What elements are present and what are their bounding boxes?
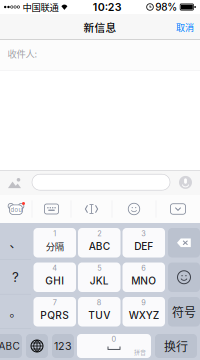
staticText: WXYZ <box>129 309 159 321</box>
staticText: 1 <box>53 229 56 238</box>
button[interactable]: Input method settings <box>0 195 32 223</box>
staticText: 123 <box>54 339 72 352</box>
staticText: 8 <box>97 298 102 307</box>
staticText: 98% <box>155 1 177 13</box>
button[interactable]: 9 <box>122 297 165 326</box>
button[interactable]: 3 <box>122 228 165 257</box>
staticText: 中国联通 <box>23 0 59 14</box>
staticText: 换行 <box>164 337 188 355</box>
button[interactable]: Dictate <box>175 172 195 192</box>
staticText: DEF <box>134 240 153 252</box>
button[interactable]: ? <box>0 262 31 292</box>
staticText: 4 <box>52 264 57 272</box>
staticText: 、 <box>9 234 21 251</box>
staticText: ABC <box>89 240 110 252</box>
staticText: 分隔 <box>46 239 64 253</box>
staticText: 。 <box>9 303 21 320</box>
button[interactable]: Keyboard layout <box>32 195 70 223</box>
button[interactable]: 1 <box>33 228 76 257</box>
staticText: 7 <box>53 298 57 307</box>
staticText: 9 <box>141 298 146 307</box>
staticText: JKL <box>90 275 109 287</box>
staticText: ? <box>12 269 19 285</box>
staticText: PQRS <box>40 309 69 321</box>
staticText: 5 <box>97 264 101 272</box>
button[interactable] <box>168 262 200 292</box>
staticText: 新信息 <box>83 19 116 35</box>
button[interactable]: 取消 <box>170 15 200 39</box>
button[interactable]: 5 <box>78 262 120 292</box>
button[interactable]: 4 <box>33 262 76 292</box>
staticText: 10:23 <box>93 0 122 13</box>
button[interactable]: 7 <box>33 297 76 326</box>
button[interactable]: ABC <box>0 334 22 358</box>
staticText: 符号 <box>172 303 196 320</box>
button[interactable]: 换行 <box>155 334 197 358</box>
button[interactable]: Emoji <box>112 195 155 223</box>
staticText: 3 <box>141 229 146 238</box>
staticText: 6 <box>141 264 146 272</box>
button[interactable]: 6 <box>122 262 165 292</box>
staticText: 收件人: <box>7 47 37 60</box>
button[interactable]: 8 <box>78 297 120 326</box>
button[interactable]: 、 <box>0 228 31 257</box>
button[interactable]: Space <box>77 334 151 358</box>
button[interactable]: Move cursor <box>71 195 111 223</box>
staticText: TUV <box>88 309 110 321</box>
button[interactable]: Hide keyboard <box>156 195 199 223</box>
button[interactable] <box>168 228 200 257</box>
staticText: 0 <box>111 335 116 343</box>
staticText: ABC <box>0 340 19 352</box>
button[interactable]: 符号 <box>168 297 200 326</box>
button[interactable]: 2 <box>78 228 120 257</box>
staticText: dou <box>10 206 21 213</box>
staticText: 2 <box>97 229 101 238</box>
button[interactable]: 123 <box>52 334 74 358</box>
staticText: GHI <box>45 275 64 287</box>
staticText: 拼音 <box>134 348 146 356</box>
button[interactable]: Attach photo <box>2 173 26 193</box>
staticText: 取消 <box>176 20 194 33</box>
staticText: MNO <box>131 275 156 287</box>
button[interactable]: 。 <box>0 297 31 326</box>
button[interactable] <box>26 334 48 358</box>
